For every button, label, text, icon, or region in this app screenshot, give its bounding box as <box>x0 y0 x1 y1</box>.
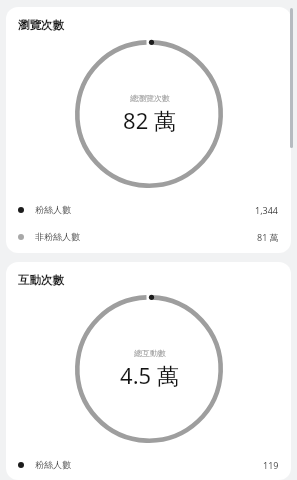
staticText: 總瀏覽次數 <box>130 93 170 103</box>
staticText: 互動次數 <box>18 273 64 287</box>
staticText: 81 萬 <box>257 231 279 243</box>
staticText: 瀏覽次數 <box>18 18 64 32</box>
staticText: 粉絲人數 <box>35 204 71 215</box>
staticText: 1,344 <box>255 204 279 216</box>
staticText: 119 <box>263 459 279 471</box>
staticText: 4.5 萬 <box>120 360 179 390</box>
staticText: 82 萬 <box>123 105 176 135</box>
staticText: 粉絲人數 <box>35 459 71 470</box>
button[interactable]: 粉絲人數 <box>6 198 291 221</box>
button[interactable]: 瀏覽次數 <box>6 7 291 253</box>
button[interactable]: 互動次數 <box>6 262 291 480</box>
staticText: 非粉絲人數 <box>35 231 80 242</box>
button[interactable]: 非粉絲人數 <box>6 225 291 248</box>
staticText: 總互動數 <box>134 348 166 358</box>
button[interactable]: 粉絲人數 <box>6 453 291 476</box>
